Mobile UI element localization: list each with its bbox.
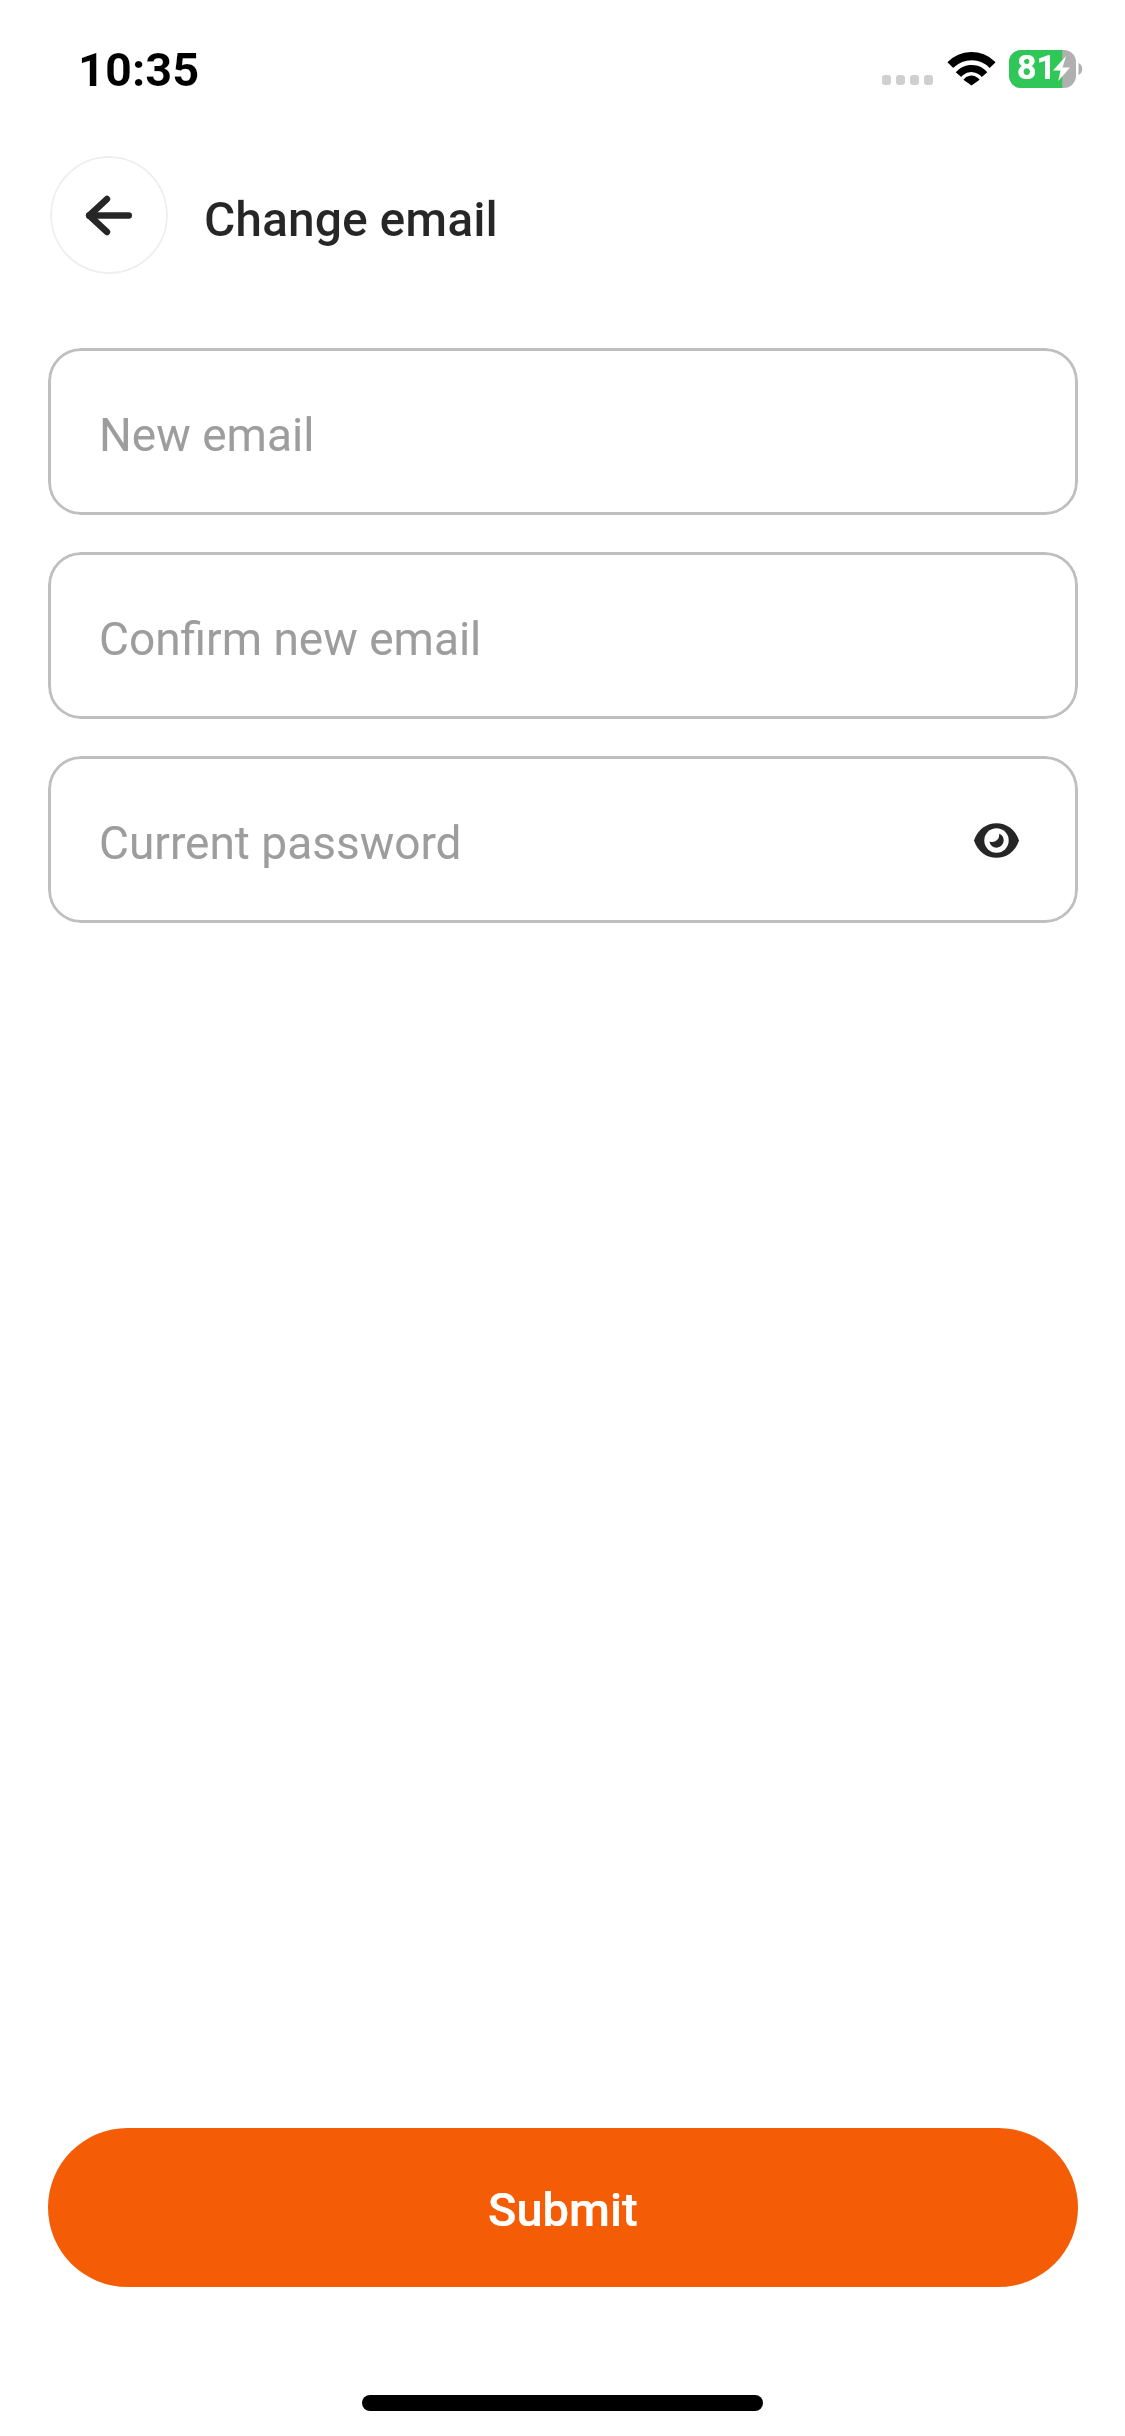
button[interactable]: Back [50,156,168,274]
staticText: Change email [204,191,498,247]
button[interactable]: Current password [48,756,1078,923]
staticText: Submit [488,2182,638,2237]
button[interactable]: Submit [48,2128,1078,2287]
staticText: Current password [99,816,462,870]
staticText: 81 [1017,47,1057,87]
staticText: Confirm new email [99,612,482,666]
staticText: New email [99,408,315,462]
button[interactable]: Show password [960,804,1032,876]
button[interactable]: New email [48,348,1078,515]
button[interactable]: Confirm new email [48,552,1078,719]
staticText: 10:35 [78,42,200,97]
